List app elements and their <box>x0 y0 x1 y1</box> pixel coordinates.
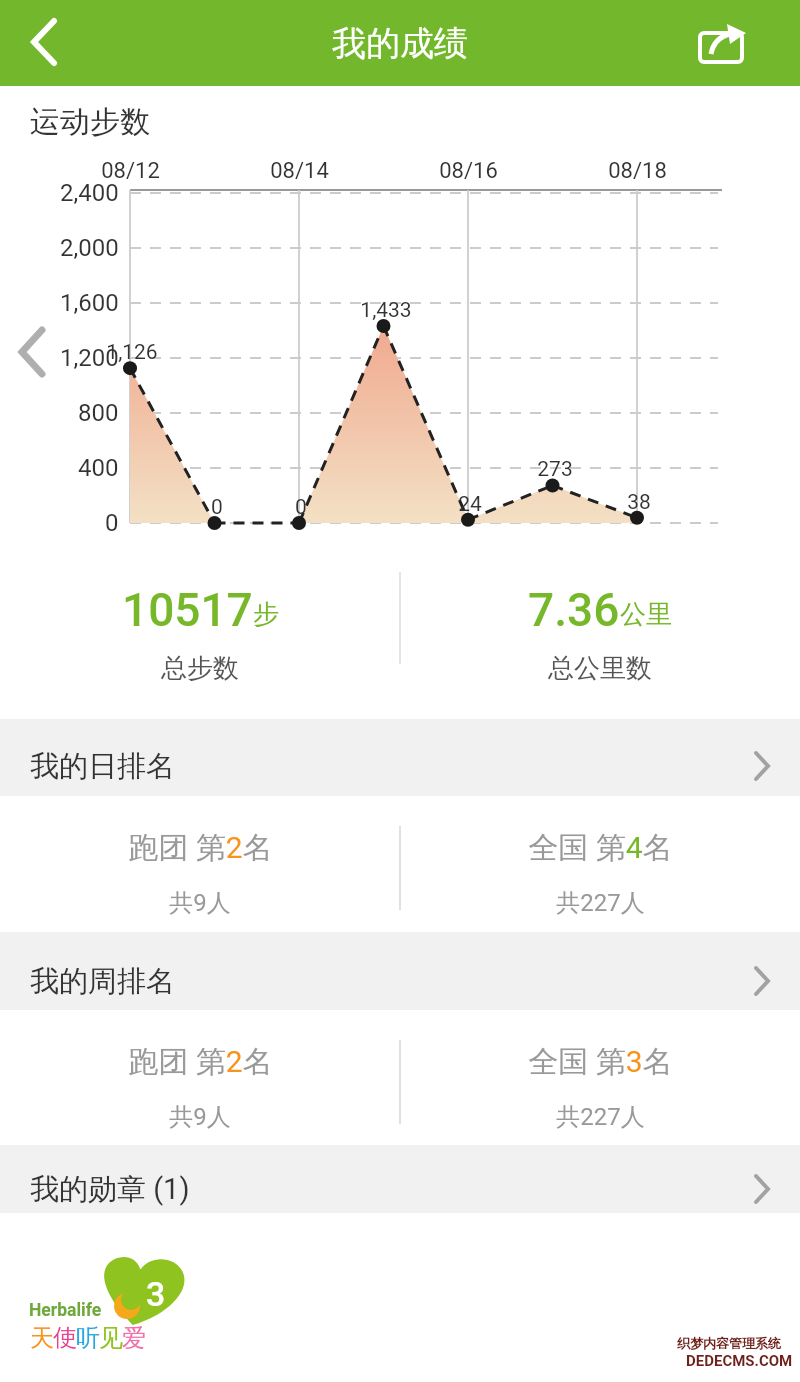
staticText: 273 <box>537 457 573 482</box>
staticText: 0 <box>105 509 119 537</box>
button[interactable] <box>0 796 400 932</box>
staticText: 08/18 <box>608 158 667 184</box>
button[interactable]: 我的勋章 (1) <box>0 1145 800 1213</box>
staticText: 0 <box>211 495 223 520</box>
staticText: 全国 第4名 <box>528 829 673 867</box>
staticText: 10517 <box>122 583 253 637</box>
staticText: 2,400 <box>60 179 119 207</box>
staticText: 共9人 <box>169 888 231 918</box>
staticText: 全国 第3名 <box>528 1043 673 1081</box>
staticText: 我的周排名 <box>30 963 175 1000</box>
staticText: 我的成绩 <box>332 22 468 65</box>
staticText: 1,600 <box>60 289 119 317</box>
staticText: 1,433 <box>360 298 412 323</box>
staticText: 3 <box>146 1274 166 1314</box>
staticText: 共227人 <box>556 888 645 918</box>
staticText: 1,126 <box>106 340 158 365</box>
staticText: 800 <box>78 399 119 427</box>
staticText: 24 <box>458 492 482 517</box>
staticText: 7.36 <box>528 583 620 637</box>
staticText: Herbalife <box>29 1300 102 1321</box>
button[interactable] <box>0 1010 400 1146</box>
staticText: 2,000 <box>60 234 119 262</box>
staticText: 使 <box>53 1323 77 1353</box>
staticText: 总步数 <box>161 652 239 685</box>
staticText: 08/14 <box>270 158 329 184</box>
staticText: 天 <box>30 1323 54 1353</box>
staticText: 公里 <box>620 598 672 631</box>
staticText: 总公里数 <box>548 652 652 685</box>
staticText: 跑团 第2名 <box>128 829 273 867</box>
button[interactable] <box>690 16 756 72</box>
staticText: 38 <box>627 490 651 515</box>
staticText: 共9人 <box>169 1102 231 1132</box>
staticText: 爱 <box>122 1323 146 1353</box>
staticText: 织梦内容管理系统 <box>677 1335 781 1351</box>
button[interactable]: 我的日排名 <box>0 719 800 796</box>
staticText: 我的勋章 (1) <box>30 1171 190 1208</box>
staticText: 400 <box>78 454 119 482</box>
button[interactable]: 我的周排名 <box>0 932 800 1010</box>
staticText: 1,200 <box>60 344 119 372</box>
staticText: 08/12 <box>101 158 160 184</box>
staticText: 见 <box>99 1323 123 1353</box>
button[interactable] <box>12 10 76 74</box>
staticText: 共227人 <box>556 1102 645 1132</box>
staticText: 0 <box>295 495 307 520</box>
staticText: DEDECMS.COM <box>686 1352 793 1370</box>
staticText: 跑团 第2名 <box>128 1043 273 1081</box>
staticText: 运动步数 <box>30 103 150 141</box>
staticText: 我的日排名 <box>30 748 175 785</box>
button[interactable] <box>400 796 800 932</box>
button[interactable] <box>400 1010 800 1146</box>
staticText: 08/16 <box>439 158 498 184</box>
staticText: 听 <box>76 1323 100 1353</box>
staticText: 步 <box>253 598 279 631</box>
